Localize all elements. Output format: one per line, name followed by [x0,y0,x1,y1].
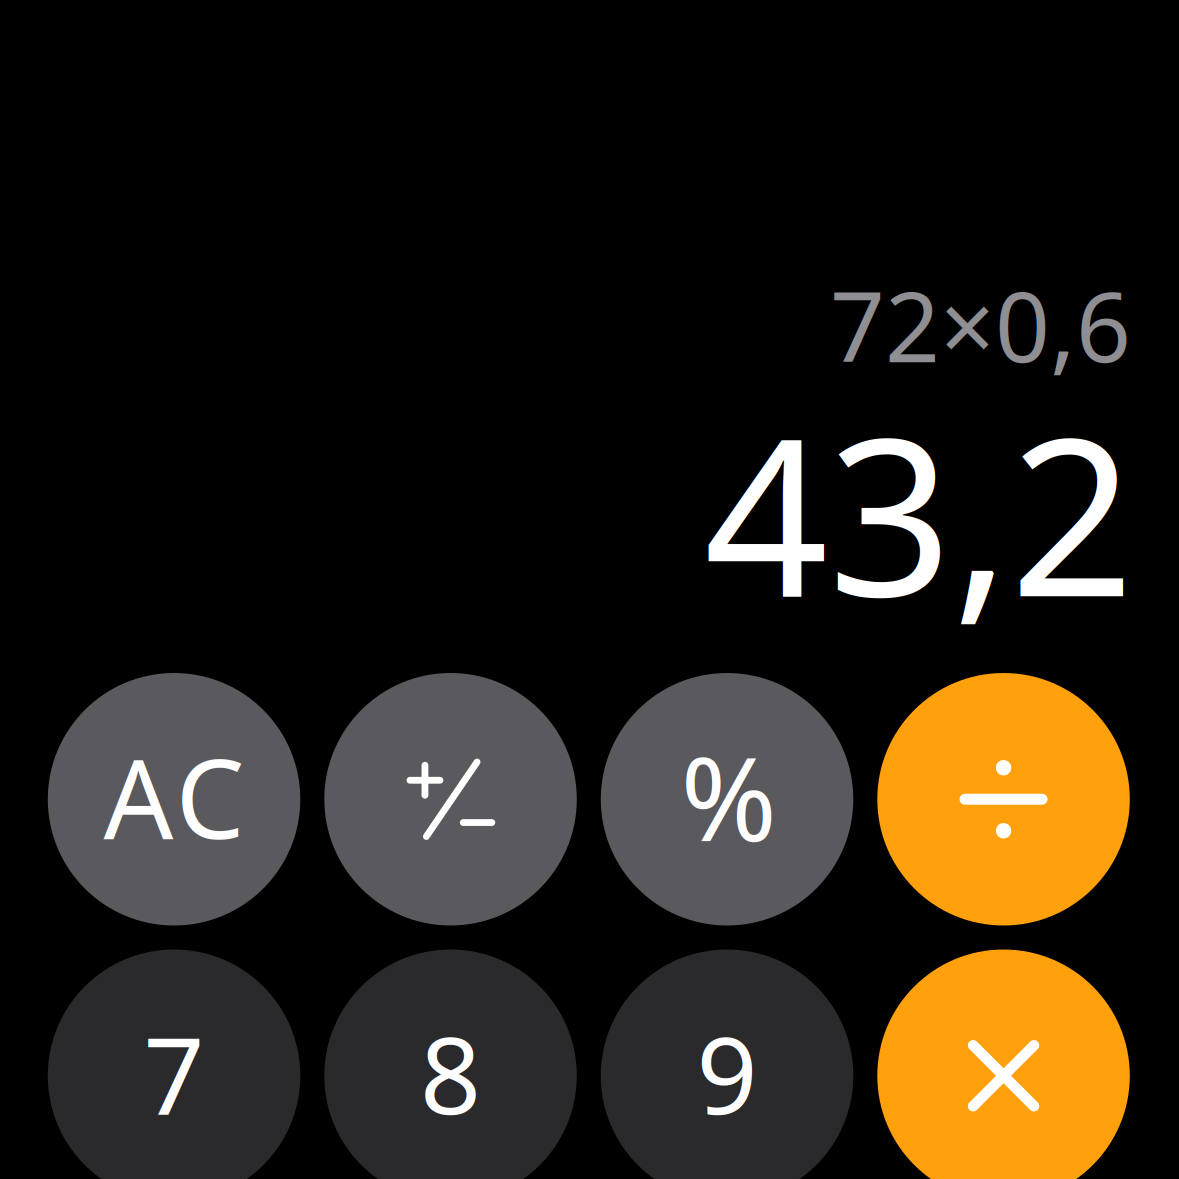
staticText: 9 [696,1002,757,1143]
button[interactable]: All clear [48,673,300,925]
button[interactable]: 8 [324,949,577,1179]
staticText: 72×0,6 [830,261,1131,389]
button[interactable]: Toggle sign [324,673,577,925]
staticText: AC [104,724,245,869]
staticText: % [680,719,776,873]
button[interactable]: 9 [601,949,853,1179]
staticText: 43,2 [704,368,1134,656]
button[interactable]: Percent [601,673,853,925]
button[interactable]: 7 [48,949,300,1179]
staticText: 7 [144,1002,205,1143]
staticText: 8 [420,1002,481,1143]
button[interactable]: Multiply [877,949,1130,1179]
button[interactable]: Divide [877,673,1130,925]
